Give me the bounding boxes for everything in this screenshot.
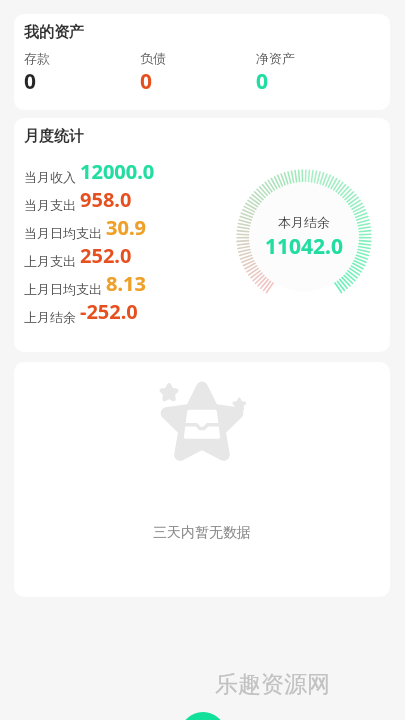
staticText: 我的资产 (24, 23, 84, 42)
staticText: 30.9 (106, 214, 146, 241)
staticText: 11042.0 (265, 232, 343, 261)
button[interactable]: 我的资产 (14, 14, 390, 110)
staticText: 当月支出 (24, 197, 76, 213)
button[interactable]: 三天内暂无数据 (14, 362, 390, 597)
staticText: 本月结余 (278, 214, 330, 230)
staticText: 8.13 (106, 270, 146, 297)
staticText: 存款 (24, 50, 50, 66)
staticText: 12000.0 (80, 158, 155, 185)
staticText: -252.0 (80, 298, 138, 325)
staticText: 负债 (140, 50, 166, 66)
staticText: 上月日均支出 (24, 281, 102, 297)
staticText: 0 (256, 67, 269, 96)
staticText: 958.0 (80, 186, 132, 213)
staticText: 0 (24, 67, 37, 96)
staticText: 当月日均支出 (24, 225, 102, 241)
staticText: 三天内暂无数据 (14, 524, 390, 542)
staticText: 乐趣资源网 (215, 670, 330, 699)
button[interactable]: 月度统计 (14, 118, 390, 352)
staticText: 月度统计 (24, 127, 84, 146)
staticText: 净资产 (256, 50, 295, 66)
staticText: 0 (140, 67, 153, 96)
staticText: 上月支出 (24, 253, 76, 269)
staticText: 当月收入 (24, 169, 76, 185)
staticText: 上月结余 (24, 309, 76, 325)
staticText: 252.0 (80, 242, 132, 269)
button[interactable]: Add record (180, 712, 226, 720)
